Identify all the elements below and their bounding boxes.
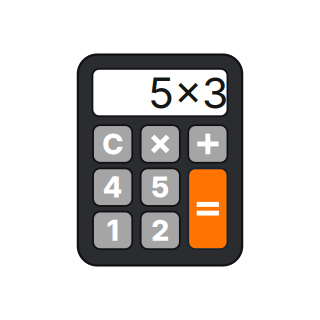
- button[interactable]: 4: [92, 167, 133, 207]
- staticText: 2: [151, 213, 169, 248]
- staticText: 5: [151, 170, 169, 204]
- button[interactable]: 5: [140, 167, 181, 207]
- button[interactable]: Equals: [187, 167, 228, 250]
- button[interactable]: Clear: [92, 124, 133, 164]
- staticText: 4: [103, 170, 123, 204]
- staticText: 5×3: [148, 67, 228, 119]
- button[interactable]: 2: [140, 211, 181, 250]
- staticText: 1: [107, 213, 119, 248]
- button[interactable]: Multiply: [140, 124, 181, 164]
- staticText: C: [102, 127, 123, 161]
- button[interactable]: Add: [187, 124, 228, 164]
- button[interactable]: 1: [92, 211, 133, 250]
